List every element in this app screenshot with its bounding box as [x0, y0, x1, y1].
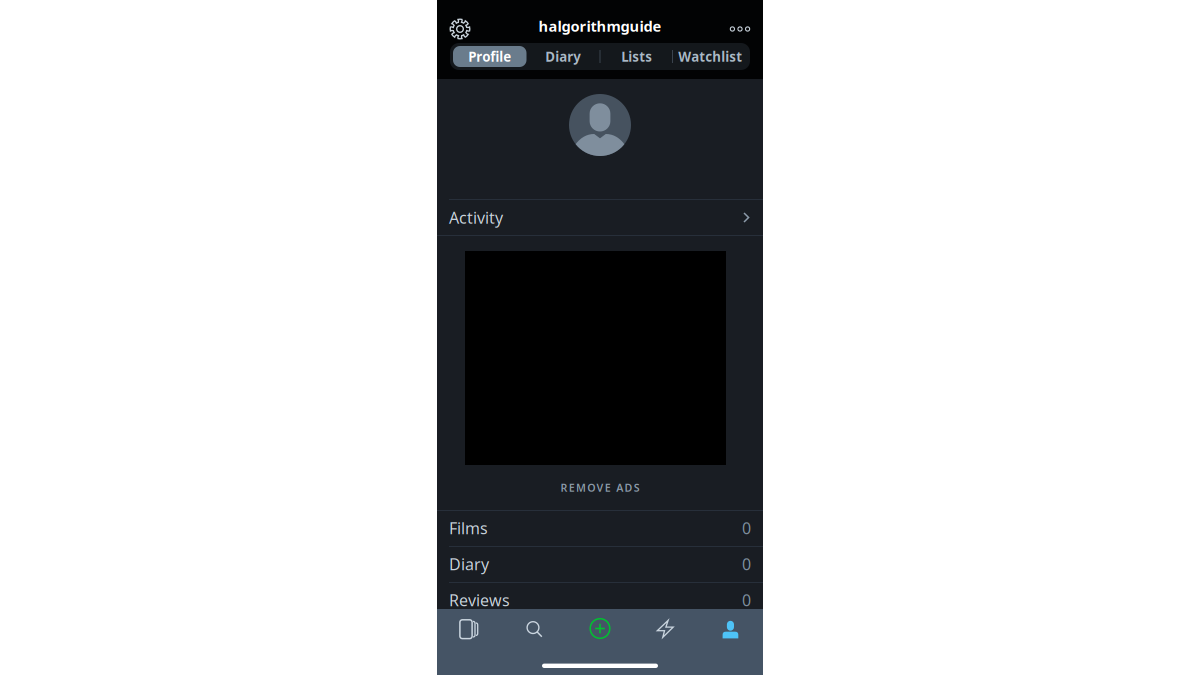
staticText: Activity: [449, 207, 503, 228]
button[interactable]: Films: [437, 609, 502, 646]
button[interactable]: More options: [717, 5, 763, 43]
button[interactable]: Add film: [567, 609, 633, 646]
button[interactable]: Activity: [437, 199, 763, 236]
button[interactable]: Watchlist: [673, 46, 747, 67]
button[interactable]: Activity: [633, 609, 698, 646]
button[interactable]: REMOVE ADS: [510, 465, 690, 510]
staticText: Reviews: [449, 589, 510, 611]
staticText: REMOVE ADS: [560, 480, 640, 495]
staticText: Films: [449, 517, 488, 539]
button[interactable]: Settings: [437, 5, 483, 43]
button[interactable]: Diary: [526, 46, 600, 67]
button[interactable]: Lists: [600, 46, 673, 67]
button[interactable]: Diary: [437, 546, 763, 582]
staticText: Profile: [468, 48, 511, 65]
staticText: 0: [742, 517, 751, 539]
button[interactable]: Films: [437, 510, 763, 546]
staticText: Diary: [449, 553, 489, 575]
button[interactable]: Search: [502, 609, 567, 646]
staticText: Lists: [621, 48, 652, 65]
button[interactable]: Profile: [453, 46, 526, 67]
staticText: Diary: [545, 48, 581, 65]
button[interactable]: Reviews: [437, 582, 763, 618]
staticText: 0: [742, 553, 751, 575]
staticText: 0: [742, 589, 751, 611]
staticText: Watchlist: [678, 48, 742, 65]
button[interactable]: Profile: [698, 609, 763, 646]
staticText: halgorithmguide: [538, 16, 661, 36]
